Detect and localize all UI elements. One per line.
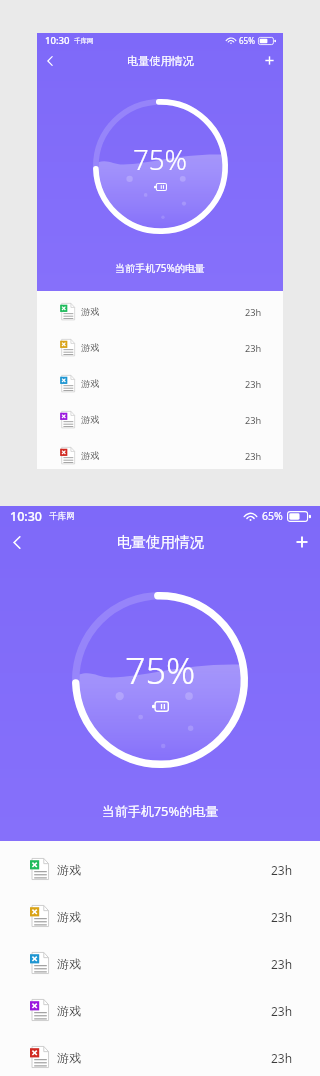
staticText: 当前手机75%的电量 bbox=[37, 261, 283, 275]
button[interactable]: Back bbox=[37, 48, 63, 73]
staticText: 游戏 bbox=[81, 306, 100, 318]
staticText: 千库网 bbox=[49, 511, 75, 522]
staticText: 23h bbox=[245, 342, 262, 355]
staticText: 游戏 bbox=[57, 862, 81, 877]
button[interactable]: 游戏 bbox=[37, 366, 283, 402]
button[interactable]: 游戏 bbox=[37, 294, 283, 330]
staticText: 23h bbox=[271, 909, 293, 925]
staticText: 游戏 bbox=[81, 450, 100, 462]
button[interactable]: 游戏 bbox=[0, 1034, 320, 1076]
staticText: 游戏 bbox=[81, 414, 100, 426]
staticText: 23h bbox=[271, 956, 293, 972]
staticText: 23h bbox=[271, 1050, 293, 1066]
staticText: 23h bbox=[245, 414, 262, 427]
staticText: 游戏 bbox=[57, 1050, 81, 1065]
button[interactable]: Add bbox=[255, 48, 283, 73]
staticText: 23h bbox=[271, 1003, 293, 1019]
staticText: 当前手机75%的电量 bbox=[0, 802, 320, 820]
staticText: 23h bbox=[245, 450, 262, 463]
staticText: 游戏 bbox=[81, 378, 100, 390]
button[interactable]: 游戏 bbox=[37, 330, 283, 366]
button[interactable]: 游戏 bbox=[0, 987, 320, 1034]
staticText: 23h bbox=[245, 378, 262, 391]
staticText: 75% bbox=[133, 140, 188, 178]
staticText: 游戏 bbox=[81, 342, 100, 354]
button[interactable]: 游戏 bbox=[0, 893, 320, 940]
button[interactable]: 游戏 bbox=[0, 940, 320, 987]
staticText: 电量使用情况 bbox=[127, 54, 194, 68]
staticText: 电量使用情况 bbox=[117, 533, 204, 551]
staticText: 游戏 bbox=[57, 909, 81, 924]
staticText: 千库网 bbox=[74, 37, 94, 45]
staticText: 65% bbox=[239, 35, 255, 46]
staticText: 23h bbox=[245, 306, 262, 319]
button[interactable]: 游戏 bbox=[0, 846, 320, 893]
button[interactable]: Add bbox=[284, 526, 320, 558]
staticText: 游戏 bbox=[57, 1003, 81, 1018]
staticText: 75% bbox=[125, 646, 196, 695]
button[interactable]: Back bbox=[0, 526, 34, 558]
staticText: 10:30 bbox=[10, 508, 43, 525]
button[interactable]: 游戏 bbox=[37, 402, 283, 438]
staticText: 23h bbox=[271, 862, 293, 878]
staticText: 10:30 bbox=[45, 34, 70, 47]
staticText: 65% bbox=[262, 509, 283, 523]
staticText: 游戏 bbox=[57, 956, 81, 971]
button[interactable]: 游戏 bbox=[37, 438, 283, 474]
